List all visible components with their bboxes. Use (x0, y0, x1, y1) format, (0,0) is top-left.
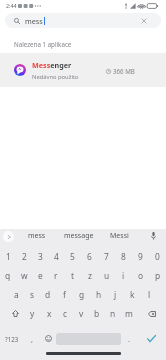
staticText: p (155, 270, 161, 281)
button[interactable]: d (40, 285, 56, 304)
staticText: Messi (110, 231, 129, 241)
button[interactable]: c (57, 304, 73, 323)
button[interactable]: 1 (0, 247, 16, 266)
button[interactable]: w (16, 266, 32, 285)
button[interactable]: Search (137, 328, 166, 349)
staticText: 8 (121, 251, 126, 262)
staticText: 2:44 (6, 2, 17, 9)
button[interactable]: t (64, 266, 81, 285)
button[interactable]: i (115, 266, 132, 285)
staticText: 1 (6, 251, 11, 262)
button[interactable]: Period (121, 328, 137, 349)
staticText: l (148, 289, 151, 300)
button[interactable]: Messenger (0, 53, 166, 87)
button[interactable]: k (124, 285, 141, 304)
button[interactable]: Clear search (140, 17, 148, 25)
staticText: h (96, 289, 102, 300)
button[interactable]: y (24, 304, 41, 323)
button[interactable]: b (89, 304, 105, 323)
button[interactable]: 5 (64, 247, 81, 266)
button[interactable]: x (41, 304, 57, 323)
staticText: v (79, 308, 84, 319)
staticText: z (88, 270, 92, 281)
staticText: t (71, 270, 75, 281)
button[interactable]: 3 (32, 247, 48, 266)
staticText: 2 (22, 251, 27, 262)
staticText: d (45, 289, 51, 300)
button[interactable]: 0 (149, 247, 166, 266)
button[interactable]: z (81, 266, 98, 285)
button[interactable]: p (149, 266, 166, 285)
staticText: 366 MB (113, 67, 135, 75)
staticText: j (114, 289, 117, 300)
button[interactable]: s (24, 285, 40, 304)
staticText: w (21, 270, 28, 281)
staticText: . (128, 334, 131, 344)
staticText: mess (25, 16, 43, 26)
button[interactable]: 9 (132, 247, 149, 266)
button[interactable]: 8 (115, 247, 132, 266)
button[interactable]: message (58, 229, 99, 243)
button[interactable]: 6 (81, 247, 98, 266)
staticText: 4 (54, 251, 59, 262)
staticText: u (104, 270, 110, 281)
button[interactable]: 2 (16, 247, 32, 266)
staticText: r (54, 270, 58, 281)
button[interactable]: mess (16, 229, 58, 243)
button[interactable]: n (105, 304, 121, 323)
button[interactable]: Emoji (40, 328, 56, 349)
staticText: Nedávno použito (32, 73, 79, 81)
staticText: f (63, 289, 66, 300)
staticText: o (138, 270, 144, 281)
button[interactable]: 4 (48, 247, 64, 266)
staticText: mess (28, 231, 46, 241)
staticText: q (5, 270, 11, 281)
button[interactable]: o (132, 266, 149, 285)
button[interactable]: e (32, 266, 48, 285)
staticText: 6 (87, 251, 92, 262)
button[interactable]: f (56, 285, 73, 304)
staticText: , (31, 334, 34, 344)
staticText: ?123 (5, 335, 19, 343)
button[interactable]: j (107, 285, 124, 304)
staticText: y (30, 308, 35, 319)
button[interactable]: Comma (24, 328, 40, 349)
staticText: k (130, 289, 135, 300)
button[interactable]: Messi (99, 229, 140, 243)
button[interactable]: Show more tools (0, 229, 16, 243)
staticText: a (14, 289, 19, 300)
staticText: 0 (155, 251, 160, 262)
button[interactable]: l (141, 285, 158, 304)
button[interactable]: v (73, 304, 89, 323)
button[interactable]: h (90, 285, 107, 304)
button[interactable]: q (0, 266, 16, 285)
staticText: c (63, 308, 68, 319)
button[interactable]: Shift (0, 304, 24, 323)
staticText: g (79, 289, 85, 300)
staticText: Nalezena 1 aplikace (14, 40, 72, 48)
button[interactable]: Voice input (140, 229, 166, 243)
staticText: 3 (38, 251, 43, 262)
button[interactable]: u (98, 266, 115, 285)
staticText: s (30, 289, 35, 300)
button[interactable]: a (8, 285, 24, 304)
staticText: e (38, 270, 43, 281)
button[interactable]: m (121, 304, 137, 323)
button[interactable]: 7 (98, 247, 115, 266)
staticText: Messenger (32, 60, 72, 70)
staticText: m (125, 308, 133, 319)
staticText: x (47, 308, 52, 319)
button[interactable]: mess (5, 13, 161, 28)
staticText: message (64, 231, 94, 241)
button[interactable]: ?123 (0, 328, 24, 349)
button[interactable]: Backspace (137, 304, 166, 323)
staticText: i (122, 270, 125, 281)
staticText: b (94, 308, 100, 319)
staticText: 9 (138, 251, 143, 262)
staticText: 5 (70, 251, 75, 262)
button[interactable]: r (48, 266, 64, 285)
staticText: n (110, 308, 116, 319)
button[interactable]: g (73, 285, 90, 304)
staticText: 7 (104, 251, 109, 262)
